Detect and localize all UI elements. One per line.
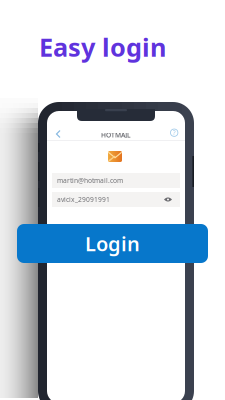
button[interactable]: Login <box>17 224 208 263</box>
button[interactable]: avicix_29091991 <box>52 192 180 207</box>
staticText: HOTMAIL <box>101 131 131 139</box>
staticText: Login <box>85 230 140 257</box>
staticText: martin@hotmail.com <box>57 176 123 185</box>
button[interactable]: martin@hotmail.com <box>52 173 180 188</box>
staticText: ? <box>173 128 176 137</box>
staticText: avicix_29091991 <box>57 195 110 204</box>
button[interactable]: Help <box>170 129 178 136</box>
button[interactable]: Back <box>52 126 63 139</box>
staticText: Easy login <box>39 30 166 64</box>
